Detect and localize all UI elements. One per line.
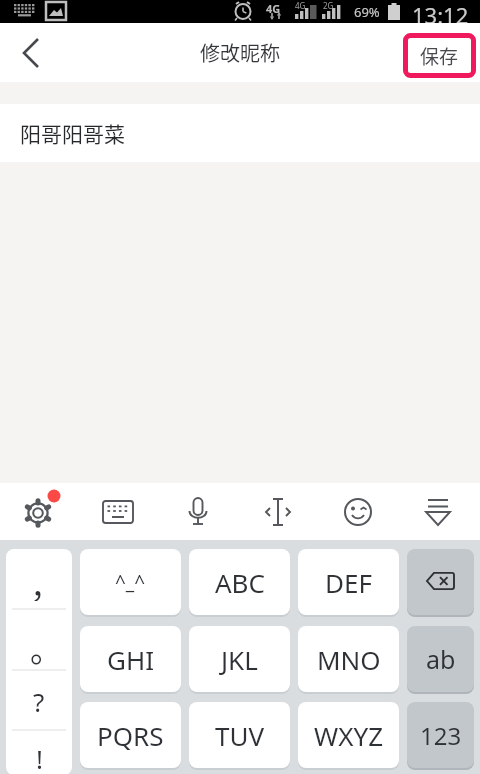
button[interactable] [410, 483, 466, 540]
staticText: DEF [325, 565, 372, 600]
button[interactable] [330, 483, 386, 540]
staticText: 4G [295, 0, 306, 10]
staticText: 保存 [420, 42, 459, 70]
button[interactable] [407, 549, 474, 615]
button[interactable]: MNO [298, 626, 399, 692]
staticText: ? [33, 684, 45, 719]
staticText: ABC [215, 565, 265, 600]
button[interactable]: DEF [298, 549, 399, 615]
staticText: ， [30, 561, 63, 601]
staticText: 阳哥阳哥菜 [20, 118, 125, 148]
button[interactable]: ， [6, 549, 72, 774]
staticText: ^_^ [115, 569, 146, 595]
staticText: PQRS [97, 718, 164, 753]
staticText: 69% [354, 3, 380, 21]
button[interactable]: 保存 [403, 33, 476, 78]
button[interactable]: TUV [189, 702, 290, 768]
button[interactable] [10, 483, 66, 540]
button[interactable] [250, 483, 306, 540]
button[interactable] [90, 483, 146, 540]
button[interactable]: ^_^ [80, 549, 181, 615]
staticText: 2G [323, 0, 334, 10]
staticText: 。 [30, 625, 63, 665]
button[interactable] [10, 31, 54, 75]
button[interactable]: GHI [80, 626, 181, 692]
staticText: GHI [107, 642, 155, 677]
staticText: WXYZ [314, 718, 384, 753]
button[interactable]: 123 [407, 702, 474, 768]
button[interactable]: 阳哥阳哥菜 [0, 104, 480, 162]
button[interactable]: WXYZ [298, 702, 399, 768]
button[interactable] [170, 483, 226, 540]
staticText: 123 [420, 719, 462, 752]
staticText: TUV [215, 718, 265, 753]
staticText: 4G [266, 1, 281, 13]
button[interactable]: JKL [189, 626, 290, 692]
staticText: 13:12 [412, 0, 469, 23]
staticText: 修改昵称 [200, 38, 280, 67]
button[interactable]: ABC [189, 549, 290, 615]
staticText: ! [36, 741, 43, 774]
button[interactable]: ab [407, 626, 474, 692]
staticText: JKL [221, 642, 258, 677]
staticText: MNO [317, 642, 381, 677]
button[interactable]: PQRS [80, 702, 181, 768]
staticText: ab [426, 642, 456, 676]
